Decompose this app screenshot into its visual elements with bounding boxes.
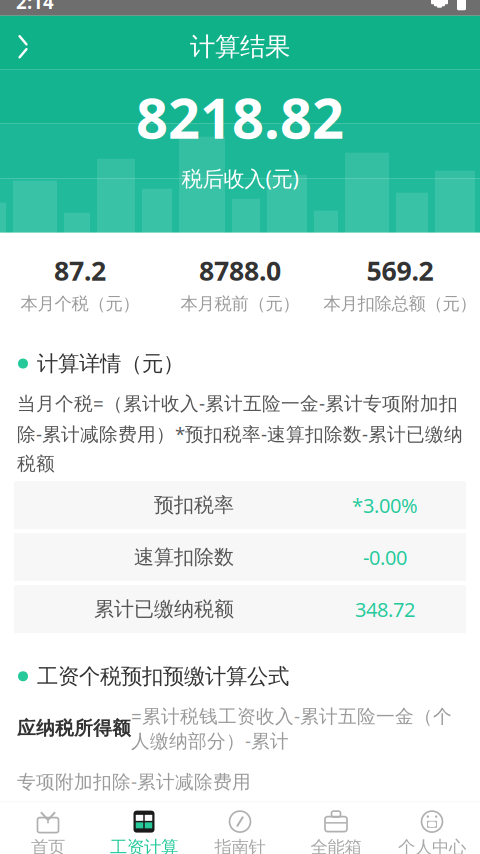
staticText: 本月个税（元） (20, 293, 139, 314)
button[interactable]: 首页 (0, 804, 96, 854)
staticText: 指南针 (214, 837, 265, 854)
staticText: 累计已缴纳税额 (94, 597, 234, 621)
staticText: 工资计算 (110, 837, 178, 854)
staticText: 87.2 (54, 253, 106, 288)
staticText: 本月税前（元） (180, 293, 299, 314)
staticText: 当月个税=（累计收入-累计五险一金-累计专项附加扣除-累计减除费用）*预扣税率-… (17, 391, 463, 475)
staticText: *3.00% (352, 492, 418, 518)
staticText: 专项附加扣除-累计减除费用 (17, 769, 251, 794)
staticText: 应纳税所得额 (17, 717, 131, 740)
staticText: 2:14 (16, 0, 54, 14)
staticText: 本月扣除总额（元） (323, 293, 476, 314)
button[interactable]: 全能箱 (288, 804, 384, 854)
button[interactable]: 个人中心 (384, 804, 480, 854)
staticText: 工资个税预扣预缴计算公式 (37, 663, 289, 689)
staticText: 税后收入(元) (181, 164, 298, 192)
button[interactable]: 返回 (0, 24, 46, 70)
staticText: 计算详情（元） (37, 350, 184, 377)
staticText: 569.2 (366, 253, 433, 288)
staticText: 8788.0 (199, 253, 281, 288)
button[interactable]: 指南针 (192, 804, 288, 854)
staticText: -0.00 (363, 544, 407, 570)
staticText: 348.72 (355, 596, 415, 622)
staticText: 速算扣除数 (134, 545, 234, 569)
staticText: 8218.82 (136, 80, 344, 154)
staticText: 首页 (31, 837, 65, 854)
button[interactable]: 工资计算 (96, 804, 192, 854)
staticText: 预扣税率 (154, 493, 234, 517)
staticText: 个人中心 (398, 837, 466, 854)
staticText: 计算结果 (190, 31, 290, 62)
staticText: 全能箱 (310, 837, 361, 854)
staticText: =累计税钱工资收入-累计五险一金（个人缴纳部分）-累计 (131, 703, 452, 753)
